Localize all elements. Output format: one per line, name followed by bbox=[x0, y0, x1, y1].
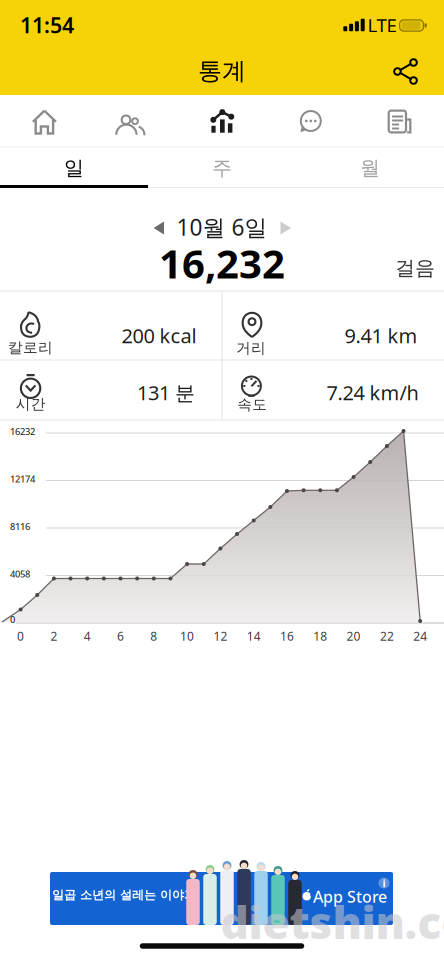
staticText: 24 bbox=[413, 628, 427, 644]
button[interactable]: 이전 날짜 bbox=[143, 211, 175, 245]
staticText: 20 bbox=[347, 628, 361, 644]
staticText: 22 bbox=[380, 628, 394, 644]
button[interactable]: 일 bbox=[0, 148, 148, 188]
staticText: dietshin.com bbox=[220, 893, 444, 951]
button[interactable]: 홈 bbox=[0, 96, 88, 148]
staticText: 10 bbox=[180, 628, 194, 644]
staticText: 16,232 bbox=[159, 236, 285, 289]
button[interactable]: 뉴스 bbox=[356, 96, 444, 148]
staticText: 0 bbox=[10, 613, 15, 626]
staticText: 12 bbox=[213, 628, 227, 644]
button[interactable]: 통계 bbox=[178, 95, 266, 147]
button[interactable]: 다음 날짜 bbox=[270, 211, 302, 245]
staticText: 16232 bbox=[10, 425, 35, 438]
button[interactable]: 친구 bbox=[89, 96, 177, 148]
button[interactable]: 주 bbox=[148, 148, 296, 188]
staticText: 거리 bbox=[236, 339, 266, 357]
staticText: 10월 6일 bbox=[176, 212, 267, 242]
staticText: i bbox=[382, 876, 385, 890]
staticText: 6 bbox=[117, 628, 124, 644]
staticText: 걸음 bbox=[395, 256, 435, 280]
staticText: 칼로리 bbox=[8, 338, 53, 356]
staticText: 일 bbox=[64, 156, 84, 180]
staticText: 월 bbox=[360, 156, 380, 180]
staticText: 9.41 km bbox=[344, 322, 417, 349]
staticText: 131 분 bbox=[137, 379, 195, 406]
staticText: 8116 bbox=[10, 520, 30, 533]
staticText: 일곱 소년의 설레는 이야기 bbox=[52, 888, 196, 902]
button[interactable]: 채팅 bbox=[267, 96, 355, 148]
staticText: 통계 bbox=[198, 56, 246, 86]
staticText: LTE bbox=[367, 13, 396, 37]
staticText: 4058 bbox=[10, 568, 30, 580]
staticText: 12174 bbox=[10, 473, 35, 485]
staticText: 14 bbox=[247, 628, 261, 644]
staticText: 0 bbox=[17, 628, 24, 644]
staticText: 11:54 bbox=[20, 11, 74, 39]
staticText: 16 bbox=[280, 628, 294, 644]
staticText: 8 bbox=[150, 628, 157, 644]
staticText: 2 bbox=[50, 628, 57, 644]
staticText: 속도 bbox=[237, 395, 267, 413]
staticText: 200 kcal bbox=[121, 322, 196, 349]
staticText: App Store bbox=[313, 886, 387, 907]
staticText: 시간 bbox=[16, 395, 46, 413]
button[interactable]: 광고 배너 bbox=[50, 872, 393, 925]
staticText: 18 bbox=[313, 628, 327, 644]
staticText: 7.24 km/h bbox=[326, 379, 418, 406]
button[interactable]: 월 bbox=[296, 148, 444, 188]
button[interactable]: 광고 정보 bbox=[378, 877, 389, 888]
staticText: 주 bbox=[212, 156, 232, 180]
staticText: 4 bbox=[84, 628, 91, 644]
button[interactable]: 공유 bbox=[391, 56, 421, 86]
